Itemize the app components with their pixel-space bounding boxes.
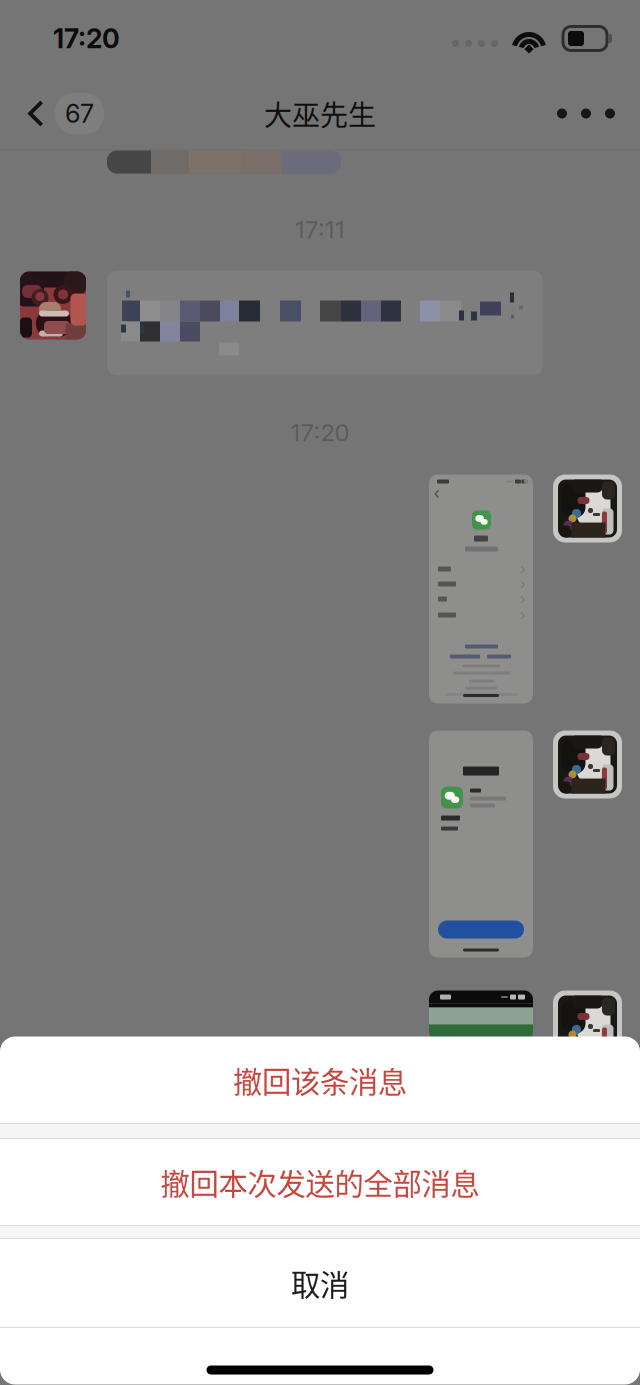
button[interactable]: 撤回该条消息 (0, 1036, 640, 1123)
staticText: 17:20 (290, 418, 349, 447)
staticText: 撤回本次发送的全部消息 (160, 1161, 479, 1203)
button[interactable]: 撤回本次发送的全部消息 (0, 1138, 640, 1225)
button[interactable]: 取消 (0, 1238, 640, 1327)
staticText: 取消 (291, 1262, 349, 1304)
button[interactable]: More options (532, 77, 640, 149)
button[interactable]: 67 (0, 77, 116, 149)
staticText: 67 (65, 98, 94, 129)
staticText: 17:11 (295, 215, 345, 244)
staticText: 撤回该条消息 (233, 1059, 407, 1101)
staticText: 大巫先生 (264, 93, 376, 134)
staticText: 17:20 (53, 22, 120, 55)
